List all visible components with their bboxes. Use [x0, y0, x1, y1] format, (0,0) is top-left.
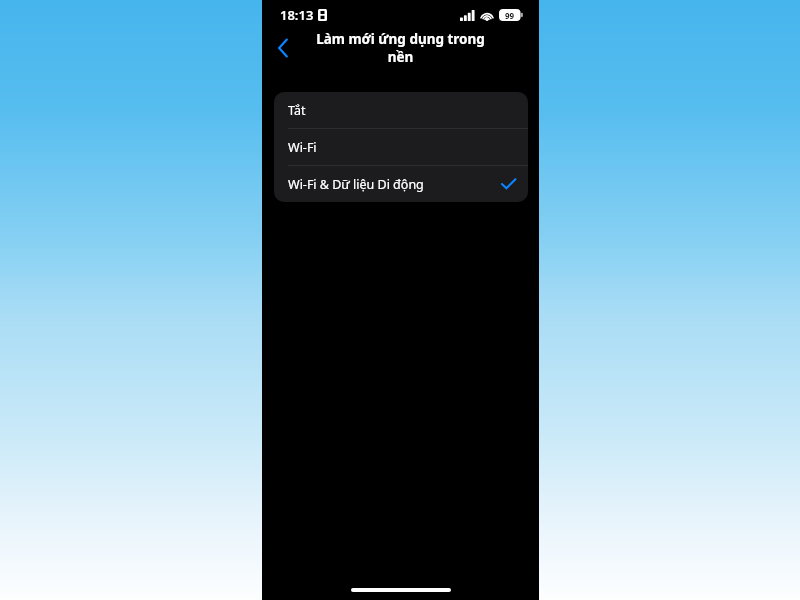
- button[interactable]: Quay lại: [266, 31, 300, 65]
- staticText: Wi-Fi: [288, 139, 317, 156]
- button[interactable]: Wi-Fi: [274, 129, 528, 165]
- staticText: Tắt: [288, 102, 306, 119]
- staticText: 99: [505, 10, 515, 21]
- button[interactable]: Tắt: [274, 92, 528, 128]
- staticText: 18:13: [280, 6, 314, 24]
- button[interactable]: Wi-Fi & Dữ liệu Di động: [274, 166, 528, 202]
- staticText: Làm mới ứng dụng trong nền: [302, 30, 499, 66]
- staticText: Wi-Fi & Dữ liệu Di động: [288, 176, 424, 193]
